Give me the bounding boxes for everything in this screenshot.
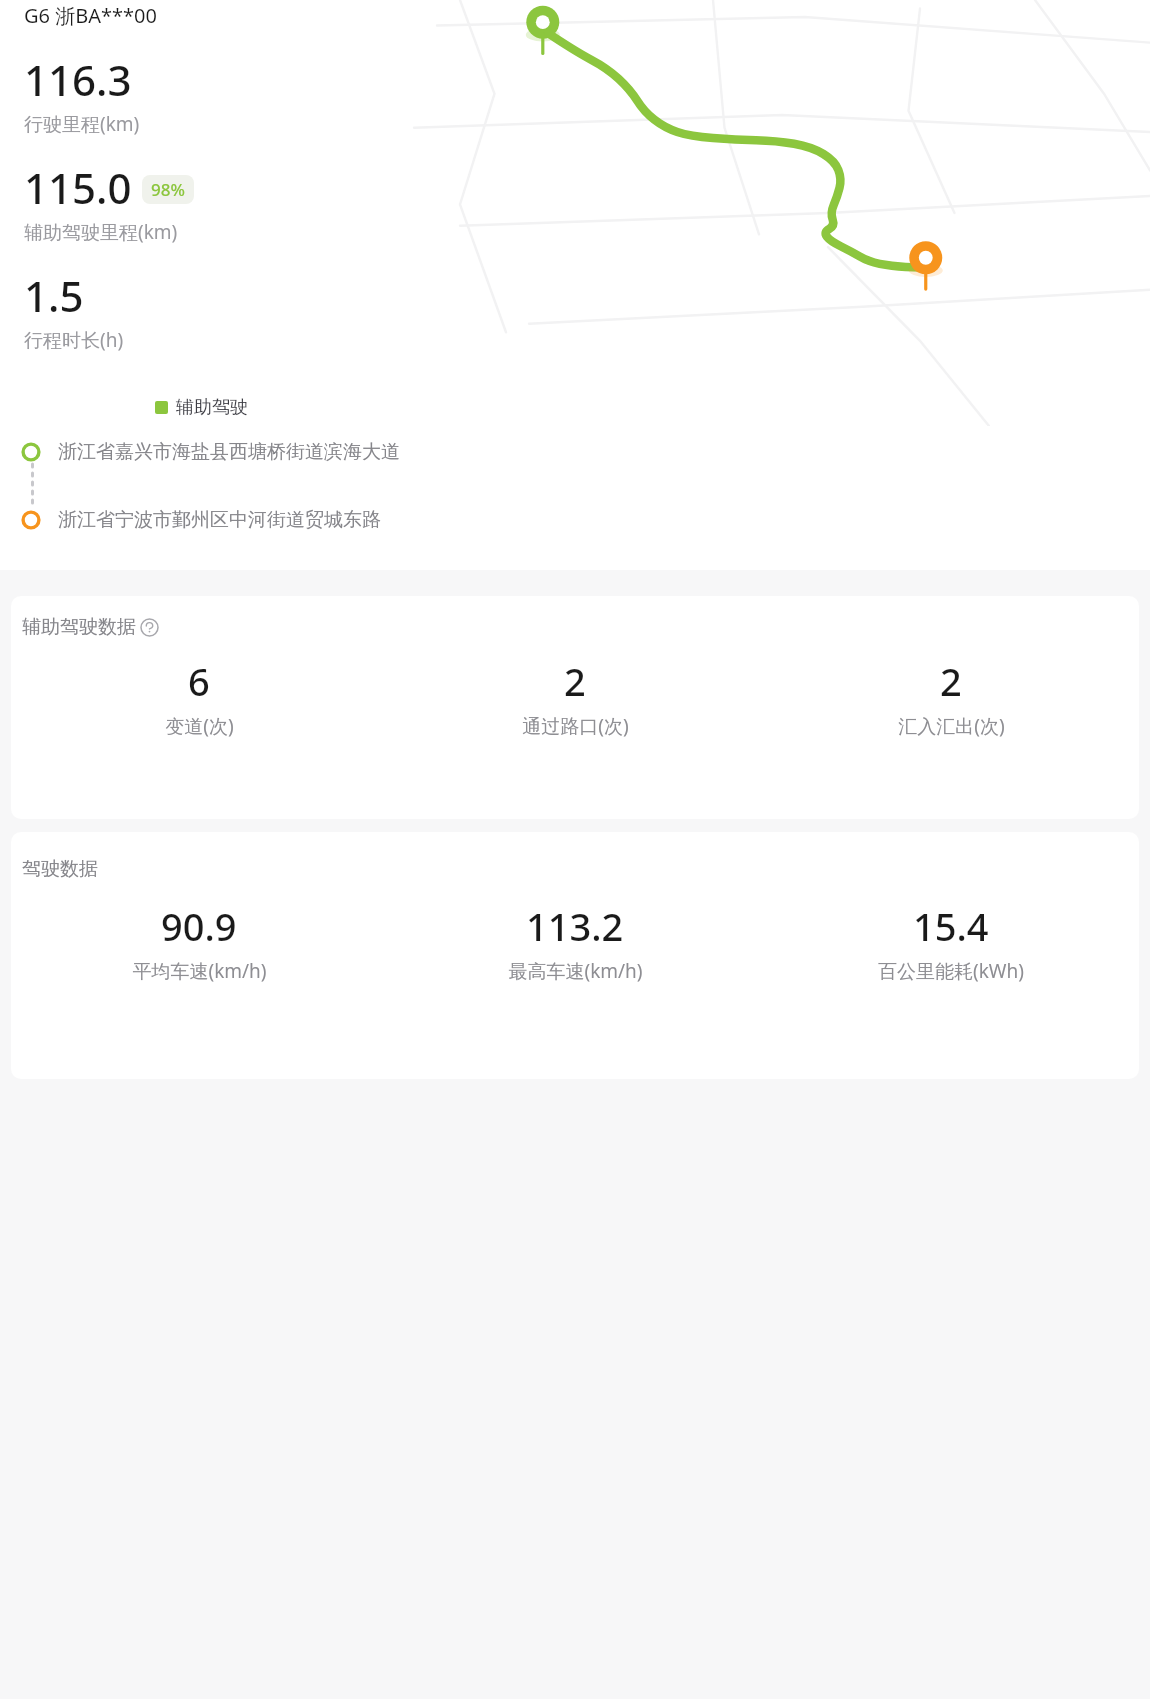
staticText: 通过路口(次) (522, 713, 629, 739)
button[interactable]: 2 (763, 655, 1139, 739)
button[interactable]: 辅助驾驶数据 (11, 596, 1139, 819)
button[interactable]: 2 (387, 655, 763, 739)
staticText: 辅助驾驶里程(km) (24, 219, 178, 245)
staticText: 90.9 (161, 900, 237, 952)
staticText: 2 (564, 655, 586, 707)
staticText: 辅助驾驶 (176, 396, 248, 419)
staticText: 浙江省嘉兴市海盐县西塘桥街道滨海大道 (58, 440, 400, 464)
staticText: 1.5 (24, 267, 84, 324)
staticText: 辅助驾驶数据 (22, 615, 136, 639)
staticText: 行驶里程(km) (24, 111, 140, 137)
staticText: 115.0 (24, 159, 132, 216)
staticText: 2 (940, 655, 962, 707)
staticText: 98% (151, 178, 185, 201)
staticText: 汇入汇出(次) (898, 713, 1005, 739)
button[interactable]: 90.9 (11, 900, 387, 984)
staticText: 113.2 (526, 900, 624, 952)
staticText: 行程时长(h) (24, 327, 124, 353)
staticText: 最高车速(km/h) (508, 958, 643, 984)
staticText: 浙江省宁波市鄞州区中河街道贸城东路 (58, 508, 381, 532)
button[interactable]: 6 (11, 655, 387, 739)
staticText: 15.4 (913, 900, 989, 952)
staticText: 百公里能耗(kWh) (878, 958, 1024, 984)
button[interactable]: 113.2 (387, 900, 763, 984)
button[interactable]: 驾驶数据 (11, 832, 1139, 1079)
staticText: 6 (188, 655, 210, 707)
staticText: 驾驶数据 (22, 857, 98, 881)
staticText: 变道(次) (165, 713, 234, 739)
staticText: G6 浙BA***00 (24, 2, 157, 29)
button[interactable]: 15.4 (763, 900, 1139, 984)
staticText: 平均车速(km/h) (132, 958, 267, 984)
button[interactable]: Help (140, 618, 159, 637)
staticText: 116.3 (24, 51, 132, 108)
